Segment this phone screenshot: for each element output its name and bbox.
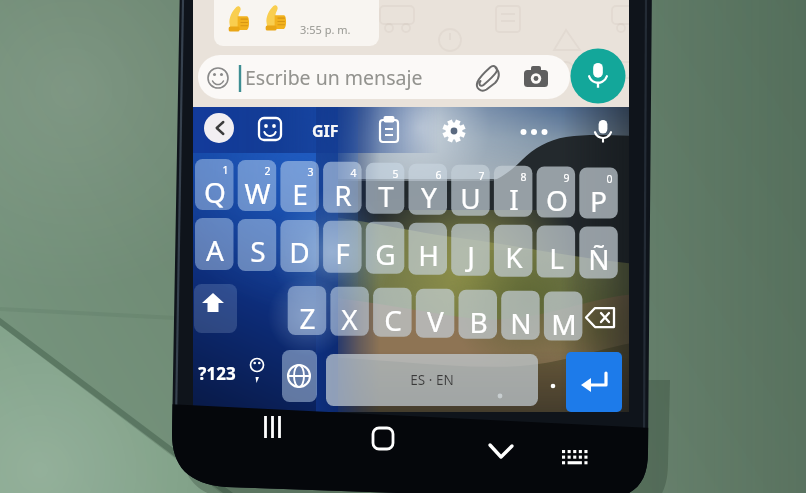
- button[interactable]: Atras: [203, 114, 235, 146]
- button[interactable]: Cambiar teclado: [548, 412, 604, 464]
- button[interactable]: Idioma: [283, 346, 318, 396]
- button[interactable]: [238, 159, 277, 206]
- staticText: H: [418, 236, 439, 274]
- button[interactable]: [412, 284, 451, 333]
- button[interactable]: [494, 159, 533, 206]
- button[interactable]: Borrar: [580, 284, 622, 333]
- staticText: N: [510, 304, 532, 342]
- button[interactable]: Escribe un mensaje: [199, 58, 539, 100]
- button[interactable]: Mensaje de voz: [566, 55, 626, 105]
- button[interactable]: [579, 218, 618, 267]
- button[interactable]: [409, 218, 448, 267]
- staticText: T: [378, 177, 394, 215]
- button[interactable]: GIF: [305, 114, 343, 146]
- button[interactable]: [324, 346, 546, 396]
- staticText: D: [289, 233, 310, 271]
- staticText: A: [206, 231, 224, 269]
- staticText: S: [250, 232, 266, 270]
- staticText: L: [549, 239, 564, 277]
- staticText: Y: [421, 178, 437, 216]
- button[interactable]: Coma: [243, 346, 275, 396]
- staticText: K: [505, 238, 523, 276]
- staticText: ?123: [198, 362, 236, 385]
- staticText: W: [244, 174, 271, 212]
- staticText: Ñ: [588, 240, 610, 278]
- button[interactable]: [323, 159, 362, 206]
- staticText: 6: [435, 168, 442, 182]
- button[interactable]: [195, 159, 234, 206]
- button[interactable]: [284, 284, 323, 333]
- staticText: 9: [563, 171, 570, 185]
- button[interactable]: [497, 284, 536, 333]
- button[interactable]: [326, 284, 365, 333]
- button[interactable]: [537, 218, 576, 267]
- button[interactable]: Ocultar teclado: [474, 412, 534, 464]
- button[interactable]: [579, 159, 618, 206]
- button[interactable]: [195, 218, 234, 267]
- button[interactable]: [238, 218, 277, 267]
- button[interactable]: Ajustes: [437, 114, 471, 148]
- button[interactable]: [366, 159, 405, 206]
- staticText: 4: [350, 166, 357, 180]
- staticText: 2: [264, 164, 271, 178]
- button[interactable]: Mas opciones: [517, 114, 551, 146]
- staticText: 3:55 p. m.: [300, 22, 351, 37]
- staticText: 0: [606, 172, 613, 186]
- button[interactable]: Camara: [576, 58, 610, 100]
- staticText: F: [335, 234, 350, 272]
- button[interactable]: Enviar: [566, 344, 622, 404]
- button[interactable]: [494, 218, 533, 267]
- button[interactable]: [280, 159, 319, 206]
- staticText: V: [427, 302, 444, 340]
- button[interactable]: Adjuntar: [540, 58, 574, 100]
- staticText: Q: [204, 173, 226, 211]
- staticText: Z: [299, 299, 316, 337]
- button[interactable]: [195, 346, 239, 396]
- staticText: P: [590, 182, 607, 220]
- button[interactable]: Mayusculas: [194, 284, 237, 333]
- staticText: ES · EN: [410, 371, 454, 389]
- staticText: J: [467, 237, 475, 275]
- button[interactable]: [537, 159, 576, 206]
- staticText: 8: [520, 170, 527, 184]
- button[interactable]: [369, 284, 408, 333]
- staticText: B: [469, 303, 488, 341]
- button[interactable]: Inicio: [352, 412, 412, 464]
- staticText: 3: [307, 165, 314, 179]
- staticText: E: [292, 175, 308, 213]
- button[interactable]: Portapapeles: [372, 114, 404, 146]
- staticText: 7: [478, 169, 485, 183]
- staticText: R: [334, 176, 352, 214]
- button[interactable]: [280, 218, 319, 267]
- staticText: 5: [392, 167, 399, 181]
- button[interactable]: [323, 218, 362, 267]
- button[interactable]: [540, 284, 579, 333]
- staticText: Escribe un mensaje: [245, 64, 423, 91]
- staticText: GIF: [312, 120, 339, 142]
- button[interactable]: Recientes: [240, 412, 300, 464]
- staticText: C: [384, 301, 402, 339]
- button[interactable]: [451, 218, 490, 267]
- button[interactable]: [409, 159, 448, 206]
- staticText: G: [375, 235, 396, 273]
- staticText: U: [460, 179, 481, 217]
- staticText: O: [546, 181, 568, 219]
- staticText: X: [341, 300, 358, 338]
- button[interactable]: Dictado por voz: [584, 113, 616, 147]
- button[interactable]: [451, 159, 490, 206]
- staticText: I: [509, 180, 519, 218]
- button[interactable]: Punto: [546, 346, 564, 396]
- button[interactable]: [455, 284, 494, 333]
- button[interactable]: Stickers: [254, 114, 286, 146]
- button[interactable]: [366, 218, 405, 267]
- staticText: 1: [222, 163, 229, 177]
- staticText: M: [551, 305, 577, 343]
